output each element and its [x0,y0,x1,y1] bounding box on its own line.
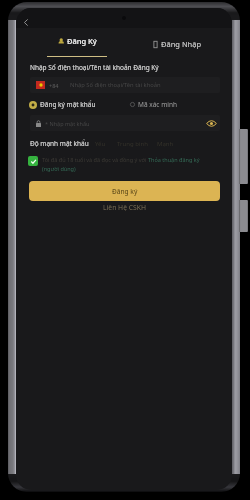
button[interactable]: +84 [30,77,220,93]
button[interactable]: Đăng Ký [47,36,107,58]
staticText: * Nhập mật khẩu [45,120,90,127]
staticText: Đăng Nhập [161,39,202,49]
staticText: Độ mạnh mật khẩu [30,139,89,148]
button[interactable]: Mã xác minh [130,99,177,109]
staticText: Mã xác minh [138,100,177,109]
button[interactable]: Show password [204,116,218,130]
staticText: Đăng Ký [67,36,97,46]
button[interactable]: Agree to terms [28,156,38,166]
button[interactable]: Đăng ký [29,181,220,201]
button[interactable]: Liên Hệ CSKH [103,203,147,212]
button[interactable]: * Nhập mật khẩu [30,115,220,131]
staticText: Nhập Số điện thoại/Tên tài khoản [70,81,161,89]
staticText: Trung bình [117,140,148,148]
button[interactable]: Đăng ký mật khẩu [29,99,96,109]
staticText: Mạnh [157,140,174,148]
button[interactable]: Đăng Nhập [147,39,207,55]
staticText: +84 [49,82,59,89]
button[interactable]: Back [18,15,33,30]
staticText: Đăng ký [112,187,138,196]
button[interactable]: Thỏa thuận đăng ký [148,156,200,163]
staticText: Đăng ký mật khẩu [40,100,96,109]
staticText: Nhập Số điện thoại/Tên tài khoản Đăng Ký [30,63,159,72]
staticText: (người dùng) [42,165,76,172]
staticText: Yếu [95,140,106,148]
staticText: Tôi đã đủ 18 tuổi và đã đọc và đồng ý vớ… [42,156,148,163]
